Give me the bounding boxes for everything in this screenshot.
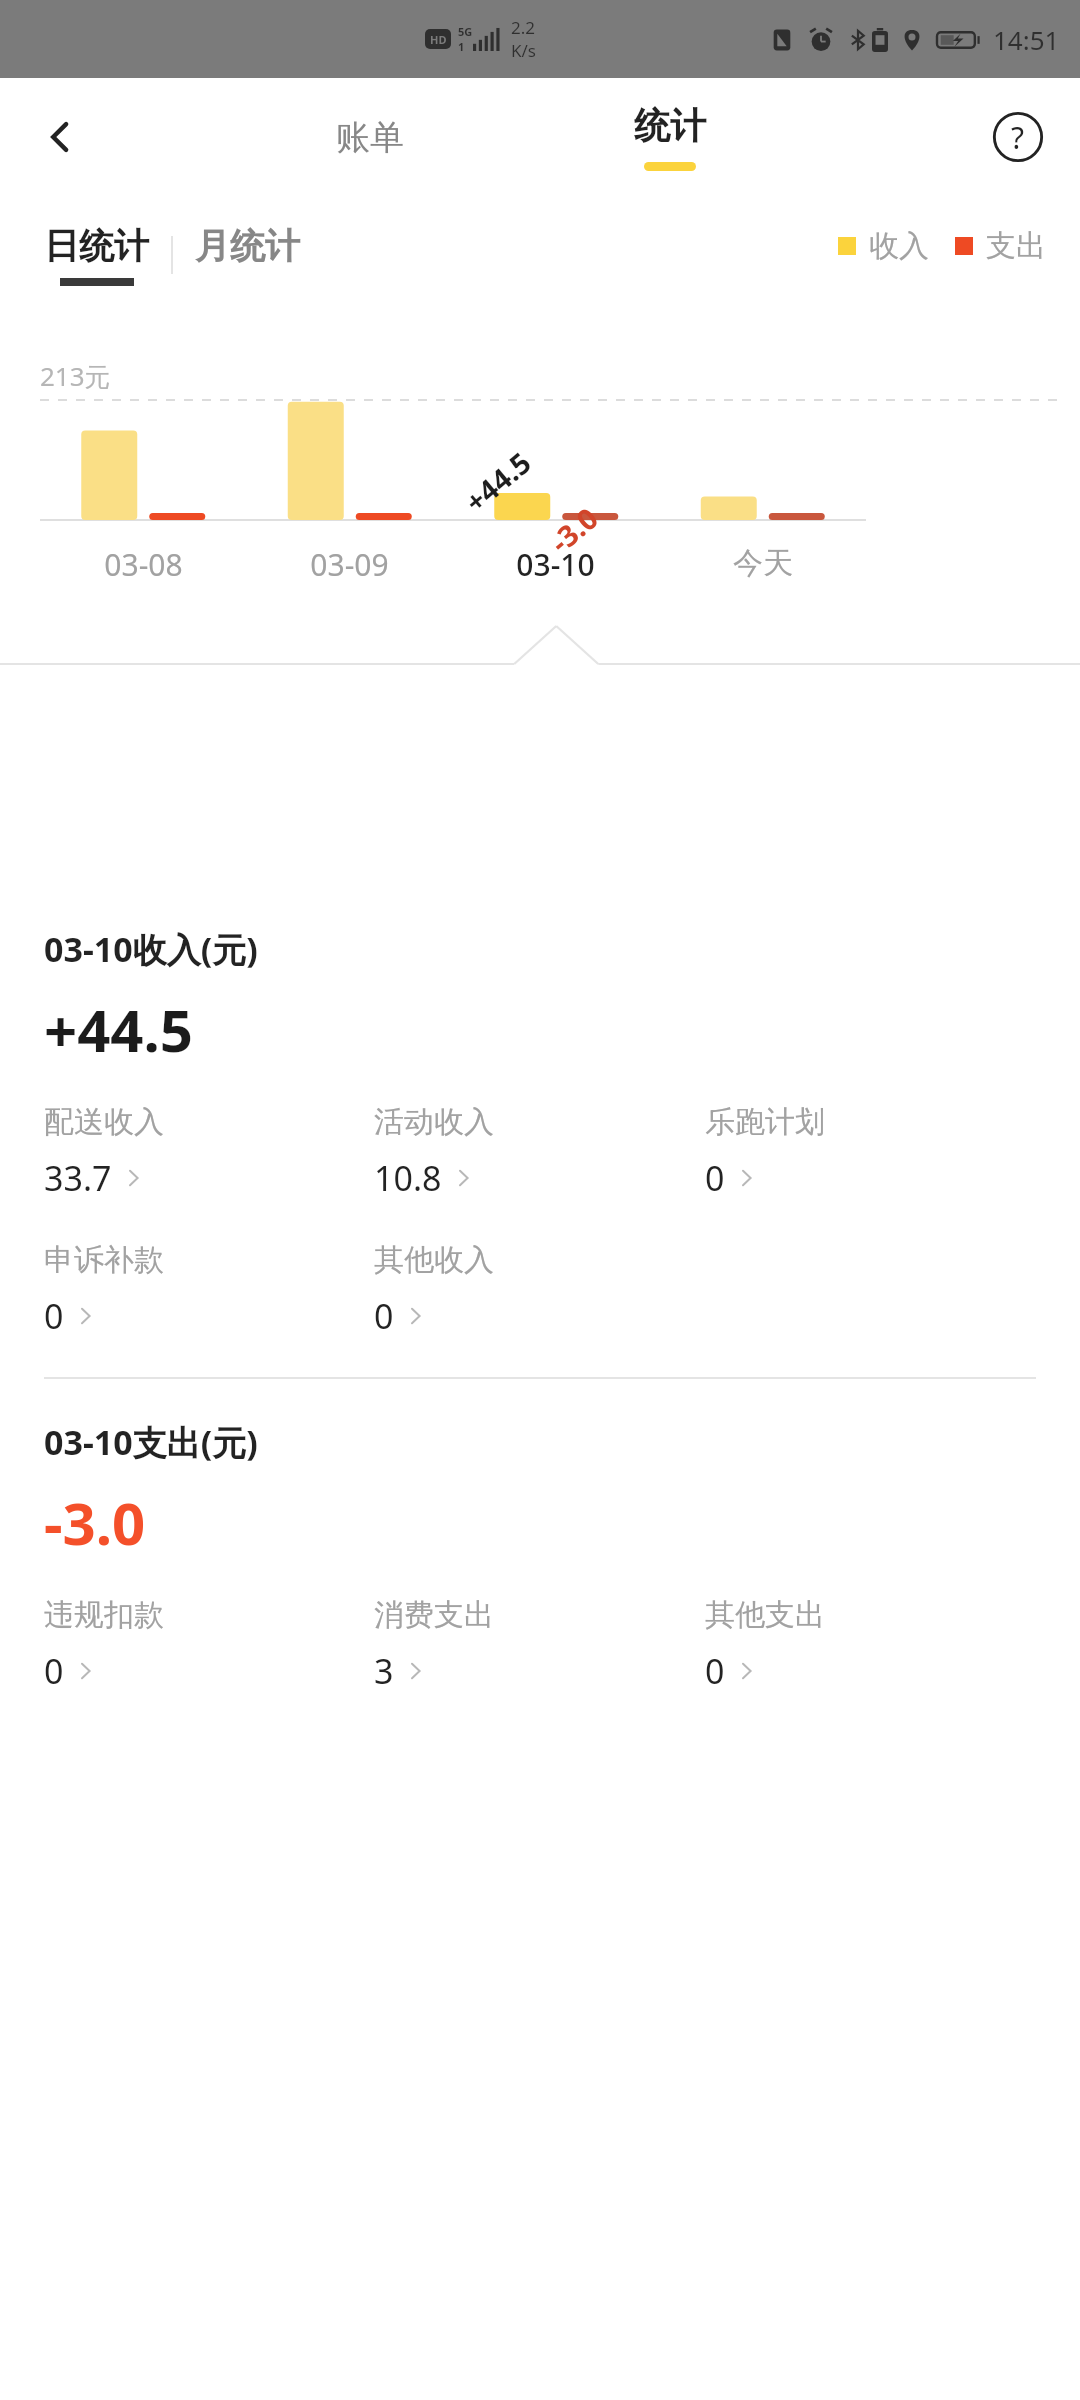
button[interactable]: 其他支出 bbox=[705, 1596, 1036, 1694]
staticText: 0 bbox=[705, 1648, 725, 1694]
staticText: 0 bbox=[44, 1648, 64, 1694]
button[interactable]: 配送收入 bbox=[44, 1103, 374, 1201]
staticText: +44.5 bbox=[456, 442, 539, 521]
staticText: -3.0 bbox=[541, 498, 605, 561]
staticText: 0 bbox=[44, 1293, 64, 1339]
button[interactable]: 违规扣款 bbox=[44, 1596, 374, 1694]
staticText: 月统计 bbox=[195, 224, 300, 268]
staticText: 03-09 bbox=[310, 544, 389, 585]
staticText: 申诉补款 bbox=[44, 1241, 164, 1279]
button[interactable]: 活动收入 bbox=[374, 1103, 705, 1201]
button[interactable]: 消费支出 bbox=[374, 1596, 705, 1694]
staticText: 3 bbox=[374, 1648, 394, 1694]
staticText: 0 bbox=[374, 1293, 394, 1339]
staticText: -3.0 bbox=[44, 1483, 146, 1562]
button[interactable]: 乐跑计划 bbox=[705, 1103, 1036, 1201]
staticText: K/s bbox=[511, 39, 536, 62]
staticText: 5G bbox=[458, 24, 473, 39]
staticText: 配送收入 bbox=[44, 1103, 164, 1141]
staticText: 其他收入 bbox=[374, 1241, 494, 1279]
staticText: 2.2 bbox=[511, 16, 536, 39]
staticText: 03-10支出(元) bbox=[44, 1419, 258, 1465]
staticText: 1 bbox=[458, 39, 465, 54]
staticText: 账单 bbox=[336, 116, 404, 159]
staticText: 其他支出 bbox=[705, 1596, 825, 1634]
staticText: 消费支出 bbox=[374, 1596, 494, 1634]
staticText: 违规扣款 bbox=[44, 1596, 164, 1634]
staticText: +44.5 bbox=[44, 990, 194, 1069]
staticText: 03-10 bbox=[516, 544, 595, 585]
button[interactable]: 账单 bbox=[300, 78, 440, 196]
staticText: 活动收入 bbox=[374, 1103, 494, 1141]
staticText: 0 bbox=[705, 1155, 725, 1201]
staticText: HD bbox=[430, 32, 447, 47]
staticText: 33.7 bbox=[44, 1155, 112, 1201]
staticText: 03-08 bbox=[104, 544, 183, 585]
staticText: 14:51 bbox=[993, 22, 1060, 57]
button[interactable]: 日统计 bbox=[44, 224, 149, 286]
button[interactable]: 03-10 bbox=[452, 544, 659, 585]
button[interactable]: 申诉补款 bbox=[44, 1241, 374, 1339]
staticText: 统计 bbox=[634, 103, 706, 148]
staticText: 03-10收入(元) bbox=[44, 926, 258, 972]
staticText: 今天 bbox=[733, 544, 793, 582]
button[interactable]: 今天 bbox=[659, 544, 866, 582]
button[interactable]: 其他收入 bbox=[374, 1241, 705, 1339]
staticText: 收入 bbox=[869, 227, 929, 265]
button[interactable]: 月统计 bbox=[195, 224, 300, 268]
staticText: 支出 bbox=[986, 227, 1046, 265]
staticText: 日统计 bbox=[44, 224, 149, 268]
staticText: 乐跑计划 bbox=[705, 1103, 825, 1141]
staticText: ? bbox=[1011, 117, 1025, 158]
button[interactable]: 统计 bbox=[600, 78, 740, 196]
button[interactable]: 03-08 bbox=[40, 544, 246, 585]
staticText: 213元 bbox=[40, 358, 111, 394]
staticText: 10.8 bbox=[374, 1155, 442, 1201]
button[interactable]: Help bbox=[982, 101, 1054, 173]
button[interactable]: 03-09 bbox=[246, 544, 452, 585]
button[interactable]: Back bbox=[24, 101, 96, 173]
